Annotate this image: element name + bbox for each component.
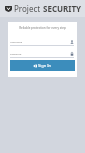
- button[interactable]: Username: [10, 40, 74, 46]
- other: Project Security logo: [5, 6, 12, 12]
- staticText: Username: [10, 40, 70, 43]
- staticText: Password: [10, 52, 70, 55]
- other: Sign in: [33, 64, 37, 68]
- button[interactable]: Sign in: [10, 60, 75, 71]
- button[interactable]: Password: [10, 52, 74, 58]
- staticText: Project: [14, 3, 43, 14]
- staticText: Sign In: [38, 63, 52, 68]
- staticText: Reliable protection for every step: [8, 26, 77, 30]
- staticText: SECURITY: [43, 3, 82, 14]
